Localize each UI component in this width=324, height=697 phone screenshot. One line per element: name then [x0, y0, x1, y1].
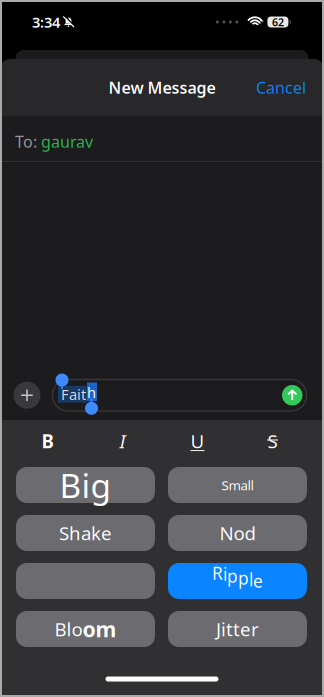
- staticText: S: [267, 429, 277, 453]
- button[interactable]: Blo: [16, 611, 155, 647]
- staticText: Big: [59, 463, 111, 507]
- staticText: Small: [221, 476, 253, 494]
- staticText: h: [87, 382, 96, 402]
- staticText: Fait: [61, 384, 86, 404]
- staticText: i: [223, 562, 227, 585]
- button[interactable]: Nod: [168, 515, 307, 551]
- staticText: U: [190, 429, 204, 453]
- button[interactable]: Small: [168, 467, 307, 503]
- staticText: R: [212, 561, 223, 584]
- button[interactable]: Gentle: [16, 563, 155, 599]
- staticText: om: [82, 615, 116, 643]
- staticText: I: [119, 429, 125, 453]
- button[interactable]: S: [235, 429, 310, 453]
- button[interactable]: Shake: [16, 515, 155, 551]
- button[interactable]: I: [85, 429, 160, 453]
- staticText: 3:34: [32, 12, 60, 32]
- staticText: Shake: [59, 521, 112, 545]
- button[interactable]: Send: [282, 385, 302, 405]
- staticText: To:: [15, 131, 41, 152]
- staticText: Nod: [219, 521, 255, 545]
- staticText: Blo: [54, 617, 82, 641]
- staticText: Jitter: [216, 617, 259, 641]
- button[interactable]: U: [160, 429, 235, 453]
- staticText: New Message: [108, 77, 215, 98]
- button[interactable]: Cancel: [256, 77, 324, 98]
- staticText: gaurav: [41, 131, 93, 152]
- staticText: l: [249, 568, 253, 591]
- staticText: p: [227, 564, 238, 587]
- button[interactable]: Add attachment: [13, 382, 40, 409]
- staticText: p: [238, 566, 249, 589]
- staticText: Cancel: [256, 77, 306, 98]
- staticText: B: [41, 429, 53, 453]
- button[interactable]: B: [10, 429, 85, 453]
- staticText: e: [253, 569, 263, 592]
- button[interactable]: Jitter: [168, 611, 307, 647]
- button[interactable]: Big: [16, 467, 155, 503]
- button[interactable]: To:: [0, 116, 324, 161]
- staticText: 62: [272, 15, 284, 29]
- button[interactable]: R: [168, 563, 307, 599]
